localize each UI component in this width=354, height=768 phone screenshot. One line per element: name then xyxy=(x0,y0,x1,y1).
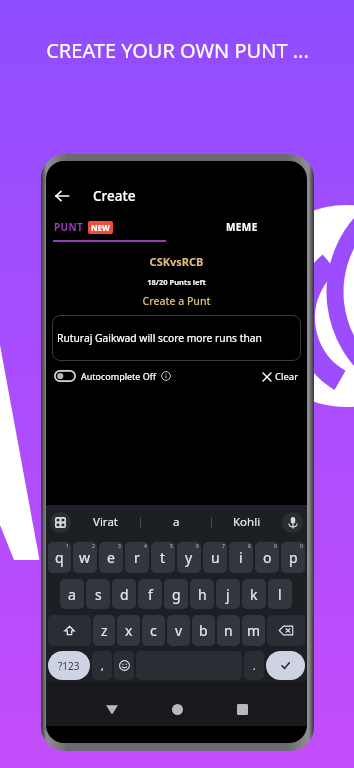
button[interactable]: , xyxy=(92,651,112,680)
staticText: r xyxy=(134,548,140,567)
staticText: x xyxy=(125,621,133,640)
button[interactable]: Shift xyxy=(48,615,91,646)
staticText: 18/20 Punts left xyxy=(46,277,307,287)
staticText: b xyxy=(199,621,208,640)
staticText: Clear xyxy=(275,370,299,383)
staticText: PUNT xyxy=(54,220,84,234)
button[interactable]: Virat xyxy=(71,505,140,539)
staticText: Kohli xyxy=(233,514,261,530)
button[interactable]: Back xyxy=(85,698,139,720)
staticText: Autocomplete Off xyxy=(81,370,157,382)
staticText: v xyxy=(175,621,183,640)
button[interactable]: t xyxy=(151,542,175,573)
staticText: t xyxy=(160,548,166,567)
staticText: Virat xyxy=(93,514,118,530)
staticText: i xyxy=(239,548,243,567)
staticText: j xyxy=(226,585,230,604)
staticText: s xyxy=(95,585,102,604)
staticText: Ruturaj Gaikwad will score more runs tha… xyxy=(57,331,262,345)
staticText: Create xyxy=(93,187,136,205)
staticText: NEW xyxy=(91,222,110,233)
staticText: e xyxy=(107,548,115,567)
button[interactable]: m xyxy=(242,615,265,646)
button[interactable]: y xyxy=(177,542,201,573)
button[interactable]: w xyxy=(73,542,97,573)
button[interactable]: u xyxy=(203,542,227,573)
button[interactable]: c xyxy=(142,615,165,646)
button[interactable]: ?123 xyxy=(48,651,90,680)
staticText: MEME xyxy=(226,220,258,234)
button[interactable]: s xyxy=(86,579,110,609)
staticText: 2 xyxy=(92,543,95,550)
staticText: f xyxy=(148,585,153,604)
staticText: k xyxy=(250,585,258,604)
button[interactable]: Enter xyxy=(266,651,305,680)
button[interactable]: r xyxy=(125,542,149,573)
staticText: , xyxy=(101,659,104,673)
button[interactable]: j xyxy=(216,579,240,609)
button[interactable]: g xyxy=(164,579,188,609)
staticText: 1 xyxy=(66,543,69,550)
staticText: n xyxy=(224,621,233,640)
button[interactable]: Recents xyxy=(215,698,269,720)
staticText: 5 xyxy=(170,543,173,550)
staticText: h xyxy=(198,585,207,604)
button[interactable]: n xyxy=(217,615,240,646)
button[interactable]: Back xyxy=(51,185,73,207)
staticText: z xyxy=(101,621,108,640)
button[interactable]: e xyxy=(99,542,123,573)
staticText: o xyxy=(263,548,272,567)
staticText: a xyxy=(68,585,76,604)
button[interactable]: . xyxy=(244,651,264,680)
staticText: y xyxy=(185,548,193,567)
button[interactable]: b xyxy=(192,615,215,646)
button[interactable]: z xyxy=(93,615,115,646)
staticText: ?123 xyxy=(58,659,80,673)
button[interactable]: PUNT xyxy=(46,212,176,242)
button[interactable]: a xyxy=(141,505,211,539)
button[interactable]: MEME xyxy=(176,212,307,242)
button[interactable]: Emoji xyxy=(114,651,134,680)
staticText: l xyxy=(278,585,282,604)
button[interactable]: i xyxy=(229,542,253,573)
staticText: 6 xyxy=(196,543,199,550)
staticText: CSKvsRCB xyxy=(46,254,307,269)
staticText: 3 xyxy=(118,543,121,550)
staticText: 8 xyxy=(248,543,251,550)
button[interactable]: Autocomplete Off xyxy=(54,370,171,382)
staticText: g xyxy=(172,585,181,604)
button[interactable]: Kohli xyxy=(212,505,282,539)
staticText: d xyxy=(120,585,129,604)
button[interactable]: a xyxy=(60,579,84,609)
staticText: . xyxy=(253,659,256,673)
staticText: 9 xyxy=(274,543,277,550)
button[interactable]: l xyxy=(268,579,292,609)
button[interactable]: f xyxy=(138,579,162,609)
staticText: 7 xyxy=(222,543,225,550)
staticText: u xyxy=(211,548,220,567)
staticText: m xyxy=(247,621,261,640)
button[interactable]: h xyxy=(190,579,214,609)
button[interactable]: Ruturaj Gaikwad will score more runs tha… xyxy=(52,315,301,361)
button[interactable]: v xyxy=(167,615,190,646)
button[interactable]: Backspace xyxy=(267,615,305,646)
staticText: w xyxy=(79,548,91,567)
button[interactable]: q xyxy=(48,542,71,573)
staticText: 4 xyxy=(144,543,147,550)
button[interactable]: Clear xyxy=(262,370,299,383)
button[interactable]: Voice input xyxy=(282,512,303,533)
staticText: Create a Punt xyxy=(46,294,307,308)
staticText: p xyxy=(289,548,298,567)
staticText: a xyxy=(173,514,180,530)
staticText: q xyxy=(55,548,64,567)
button[interactable]: x xyxy=(117,615,140,646)
button[interactable]: Clipboard xyxy=(50,512,71,533)
staticText: c xyxy=(150,621,157,640)
button[interactable]: d xyxy=(112,579,136,609)
staticText: CREATE YOUR OWN PUNT ... xyxy=(46,37,309,64)
button[interactable]: Home xyxy=(139,698,215,720)
button[interactable]: o xyxy=(255,542,279,573)
button[interactable]: k xyxy=(242,579,266,609)
button[interactable]: p xyxy=(281,542,305,573)
